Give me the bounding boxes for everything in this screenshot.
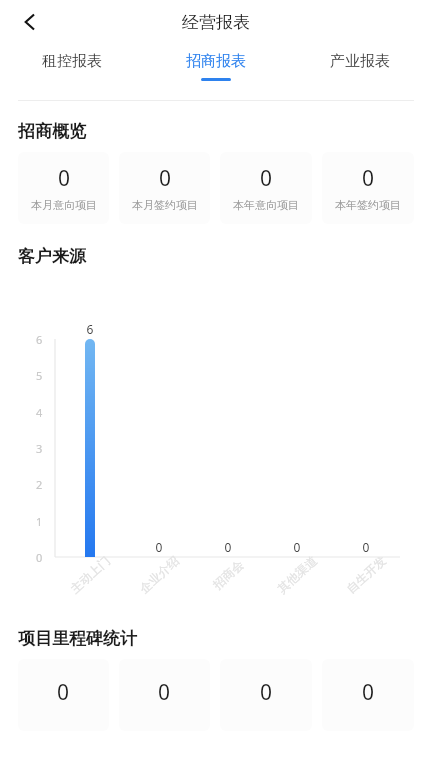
staticText: 0 bbox=[159, 164, 172, 193]
button[interactable]: 0 bbox=[322, 659, 414, 731]
button[interactable]: 0 bbox=[220, 659, 312, 731]
staticText: 本年签约项目 bbox=[335, 198, 401, 212]
staticText: 其他渠道 bbox=[274, 553, 320, 596]
staticText: 本月意向项目 bbox=[31, 198, 97, 212]
staticText: 本月签约项目 bbox=[132, 198, 198, 212]
button[interactable]: Back bbox=[10, 2, 50, 42]
staticText: 1 bbox=[36, 514, 43, 529]
staticText: 0 bbox=[158, 678, 171, 707]
staticText: 0 bbox=[214, 539, 242, 555]
staticText: 经营报表 bbox=[182, 12, 250, 33]
staticText: 招商报表 bbox=[186, 52, 246, 71]
staticText: 4 bbox=[36, 405, 43, 420]
button[interactable]: 租控报表 bbox=[0, 44, 144, 81]
staticText: 0 bbox=[36, 550, 43, 565]
staticText: 本年意向项目 bbox=[233, 198, 299, 212]
button[interactable]: 0 bbox=[18, 659, 109, 731]
staticText: 招商会 bbox=[210, 557, 246, 592]
staticText: 招商概览 bbox=[18, 121, 86, 142]
button[interactable]: 0 bbox=[18, 152, 109, 224]
button[interactable]: 招商报表 bbox=[144, 44, 288, 81]
staticText: 主动上门 bbox=[67, 553, 113, 596]
staticText: 客户来源 bbox=[18, 246, 86, 267]
staticText: 5 bbox=[36, 368, 43, 383]
button[interactable]: 0 bbox=[322, 152, 414, 224]
staticText: 产业报表 bbox=[330, 52, 390, 71]
staticText: 6 bbox=[76, 321, 104, 337]
staticText: 自生开发 bbox=[343, 553, 389, 596]
staticText: 6 bbox=[36, 332, 43, 347]
button[interactable]: 0 bbox=[119, 659, 210, 731]
staticText: 3 bbox=[36, 441, 43, 456]
staticText: 2 bbox=[36, 477, 43, 492]
staticText: 项目里程碑统计 bbox=[18, 628, 137, 649]
staticText: 0 bbox=[145, 539, 173, 555]
staticText: 0 bbox=[362, 164, 375, 193]
staticText: 0 bbox=[283, 539, 311, 555]
staticText: 0 bbox=[352, 539, 380, 555]
button[interactable]: 产业报表 bbox=[288, 44, 432, 81]
staticText: 租控报表 bbox=[42, 52, 102, 71]
staticText: 0 bbox=[362, 678, 375, 707]
staticText: 0 bbox=[57, 678, 70, 707]
staticText: 0 bbox=[260, 678, 273, 707]
staticText: 0 bbox=[260, 164, 273, 193]
button[interactable]: 0 bbox=[220, 152, 312, 224]
button[interactable]: 0 bbox=[119, 152, 210, 224]
staticText: 0 bbox=[58, 164, 71, 193]
staticText: 企业介绍 bbox=[136, 553, 182, 596]
